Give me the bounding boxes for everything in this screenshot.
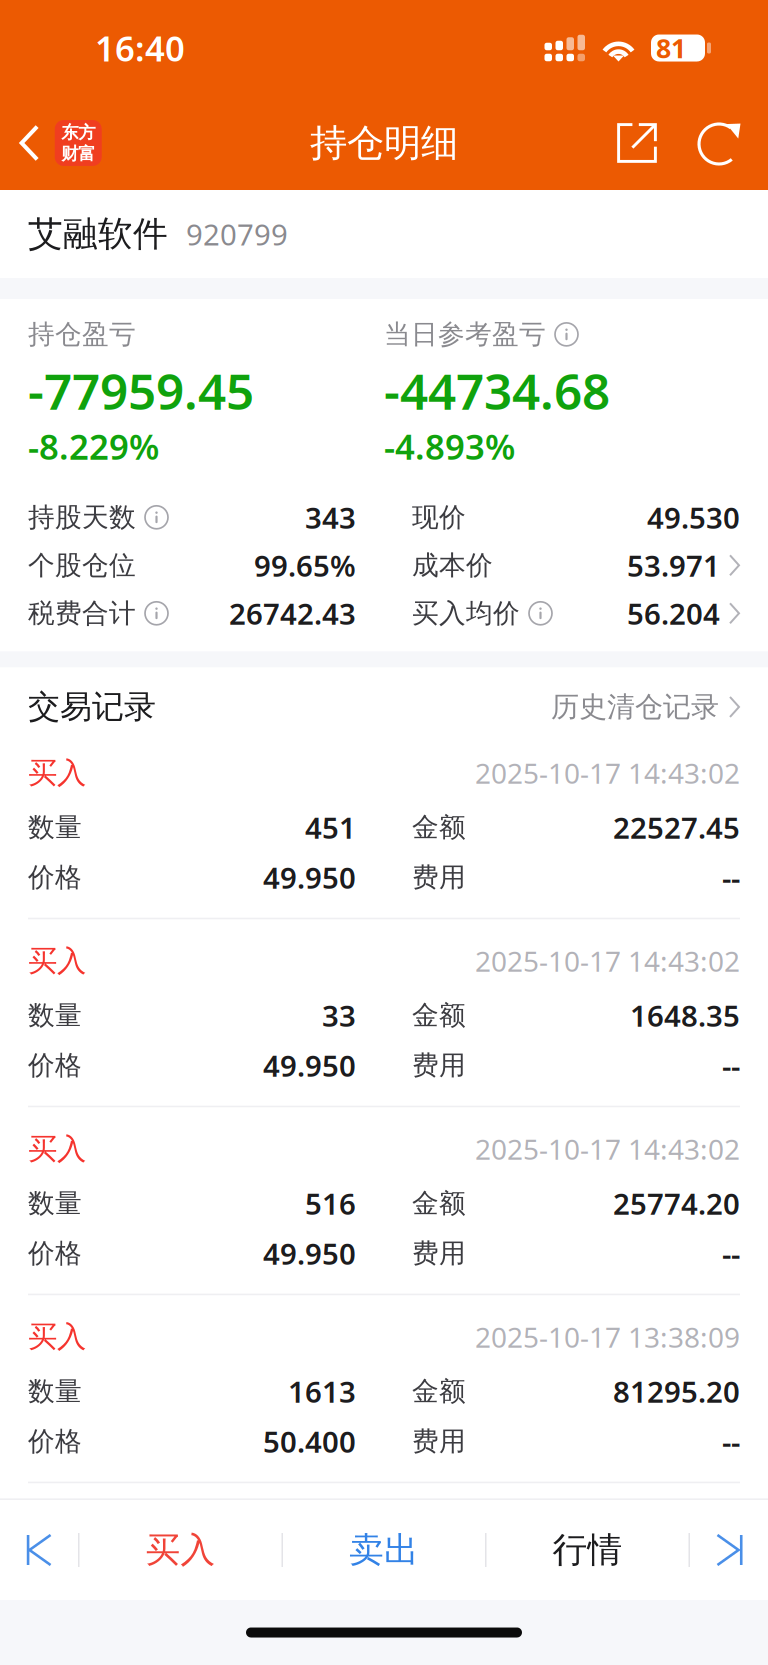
button[interactable]: 分享 bbox=[608, 114, 666, 172]
staticText: 数量 bbox=[28, 1375, 82, 1408]
button[interactable]: 费用 bbox=[412, 1416, 740, 1466]
staticText: 买入 bbox=[28, 1319, 86, 1355]
staticText: 费用 bbox=[412, 1237, 466, 1270]
button[interactable]: 买入 bbox=[79, 1500, 281, 1600]
button[interactable]: 返回 东方财富 bbox=[0, 112, 112, 174]
staticText: 金额 bbox=[412, 1375, 466, 1408]
staticText: 26742.43 bbox=[229, 594, 356, 633]
staticText: 买入均价 bbox=[412, 597, 520, 630]
button[interactable]: 成本价 bbox=[412, 541, 740, 589]
staticText: -- bbox=[722, 1234, 740, 1273]
button[interactable]: 价格 bbox=[28, 1416, 356, 1466]
staticText: 税费合计 bbox=[28, 597, 136, 630]
staticText: -77959.45 bbox=[28, 358, 254, 423]
staticText: 53.971 bbox=[627, 546, 720, 585]
staticText: 买入 bbox=[28, 755, 86, 791]
staticText: -8.229% bbox=[28, 423, 159, 469]
staticText: 16:40 bbox=[95, 25, 185, 71]
button[interactable]: 个股仓位 bbox=[28, 541, 356, 589]
button[interactable]: 历史清仓记录 bbox=[551, 690, 740, 724]
staticText: -- bbox=[722, 1046, 740, 1085]
button[interactable]: 费用 bbox=[412, 1040, 740, 1090]
staticText: 卖出 bbox=[349, 1529, 419, 1571]
staticText: -4.893% bbox=[384, 423, 515, 469]
staticText: 2025-10-17 14:43:02 bbox=[475, 1130, 740, 1167]
staticText: -44734.68 bbox=[384, 358, 610, 423]
staticText: 99.65% bbox=[254, 546, 356, 585]
staticText: 费用 bbox=[412, 861, 466, 894]
button[interactable]: 金额 bbox=[412, 802, 740, 852]
button[interactable]: 数量 bbox=[28, 1366, 356, 1416]
staticText: 当日参考盈亏 bbox=[384, 318, 546, 351]
staticText: 343 bbox=[305, 498, 356, 537]
button[interactable]: 数量 bbox=[28, 990, 356, 1040]
staticText: 49.530 bbox=[647, 498, 740, 537]
staticText: 数量 bbox=[28, 1187, 82, 1220]
staticText: 56.204 bbox=[627, 594, 720, 633]
button[interactable]: 持股天数 bbox=[28, 493, 356, 541]
staticText: 价格 bbox=[28, 1237, 82, 1270]
button[interactable]: 金额 bbox=[412, 1366, 740, 1416]
staticText: 现价 bbox=[412, 501, 466, 534]
button[interactable]: 数量 bbox=[28, 1178, 356, 1228]
staticText: 历史清仓记录 bbox=[551, 690, 719, 724]
button[interactable]: 价格 bbox=[28, 1228, 356, 1278]
staticText: 买入 bbox=[28, 1131, 86, 1167]
staticText: 持仓明细 bbox=[310, 120, 458, 166]
button[interactable]: 金额 bbox=[412, 1178, 740, 1228]
staticText: 价格 bbox=[28, 861, 82, 894]
staticText: 2025-10-17 13:38:09 bbox=[475, 1318, 740, 1355]
staticText: 持仓盈亏 bbox=[28, 318, 136, 351]
button[interactable]: 费用 bbox=[412, 852, 740, 902]
staticText: 财富 bbox=[61, 143, 95, 164]
staticText: -- bbox=[722, 858, 740, 897]
staticText: 81295.20 bbox=[613, 1372, 740, 1411]
button[interactable]: 卖出 bbox=[283, 1500, 485, 1600]
staticText: 数量 bbox=[28, 811, 82, 844]
staticText: 东方 bbox=[61, 122, 95, 143]
staticText: 艾融软件 bbox=[28, 213, 168, 255]
button[interactable]: 金额 bbox=[412, 990, 740, 1040]
staticText: 451 bbox=[305, 808, 356, 847]
staticText: 价格 bbox=[28, 1425, 82, 1458]
button[interactable]: 价格 bbox=[28, 1040, 356, 1090]
staticText: 50.400 bbox=[263, 1422, 356, 1461]
button[interactable]: 费用 bbox=[412, 1228, 740, 1278]
button[interactable]: 行情 bbox=[486, 1500, 688, 1600]
button[interactable]: 买入均价 bbox=[412, 589, 740, 637]
staticText: 33 bbox=[322, 996, 356, 1035]
staticText: 22527.45 bbox=[613, 808, 740, 847]
button[interactable]: 现价 bbox=[412, 493, 740, 541]
staticText: 买入 bbox=[145, 1529, 215, 1571]
staticText: 2025-10-17 14:43:02 bbox=[475, 754, 740, 791]
staticText: 516 bbox=[305, 1184, 356, 1223]
staticText: 金额 bbox=[412, 1187, 466, 1220]
staticText: 价格 bbox=[28, 1049, 82, 1082]
staticText: 49.950 bbox=[263, 1046, 356, 1085]
staticText: 个股仓位 bbox=[28, 549, 136, 582]
button[interactable]: 上一只 bbox=[0, 1500, 78, 1600]
button[interactable]: 下一只 bbox=[690, 1500, 768, 1600]
staticText: 成本价 bbox=[412, 549, 493, 582]
button[interactable]: 价格 bbox=[28, 852, 356, 902]
button[interactable]: 数量 bbox=[28, 802, 356, 852]
staticText: 49.950 bbox=[263, 1234, 356, 1273]
staticText: 49.950 bbox=[263, 858, 356, 897]
staticText: 交易记录 bbox=[28, 687, 156, 727]
staticText: -- bbox=[722, 1422, 740, 1461]
staticText: 金额 bbox=[412, 999, 466, 1032]
button[interactable]: 税费合计 bbox=[28, 589, 356, 637]
staticText: 费用 bbox=[412, 1425, 466, 1458]
staticText: 买入 bbox=[28, 943, 86, 979]
staticText: 金额 bbox=[412, 811, 466, 844]
staticText: 1648.35 bbox=[630, 996, 740, 1035]
staticText: 25774.20 bbox=[613, 1184, 740, 1223]
staticText: 920799 bbox=[186, 215, 288, 254]
staticText: 2025-10-17 14:43:02 bbox=[475, 942, 740, 979]
staticText: 行情 bbox=[552, 1529, 622, 1571]
staticText: 1613 bbox=[288, 1372, 356, 1411]
staticText: 81 bbox=[656, 30, 686, 66]
button[interactable]: 刷新 bbox=[692, 114, 750, 172]
staticText: 数量 bbox=[28, 999, 82, 1032]
staticText: 费用 bbox=[412, 1049, 466, 1082]
